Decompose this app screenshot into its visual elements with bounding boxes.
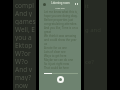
staticText: now live	[55, 6, 65, 9]
staticText: ce?	[85, 58, 94, 66]
staticText: compl	[15, 1, 34, 9]
staticText: may?	[15, 73, 31, 81]
staticText: now	[15, 81, 28, 89]
staticText: g and	[85, 26, 102, 34]
staticText: W?o	[15, 57, 28, 65]
staticText: W?or	[15, 49, 31, 57]
staticText: it	[85, 2, 89, 10]
staticText: Well, E	[15, 25, 35, 33]
staticText: Listening room	[51, 1, 70, 5]
button[interactable]: More options	[74, 2, 78, 6]
button[interactable]: compl	[13, 0, 36, 90]
staticText: you a	[15, 33, 32, 41]
staticText: And v	[15, 65, 33, 73]
staticText: games	[15, 17, 36, 25]
staticText: And y	[15, 9, 33, 17]
staticText: Let me know what this is, hope you are d…	[44, 10, 78, 70]
button[interactable]: Back	[43, 3, 46, 6]
staticText: Ektop	[15, 41, 33, 49]
button[interactable]: Play	[57, 76, 64, 83]
